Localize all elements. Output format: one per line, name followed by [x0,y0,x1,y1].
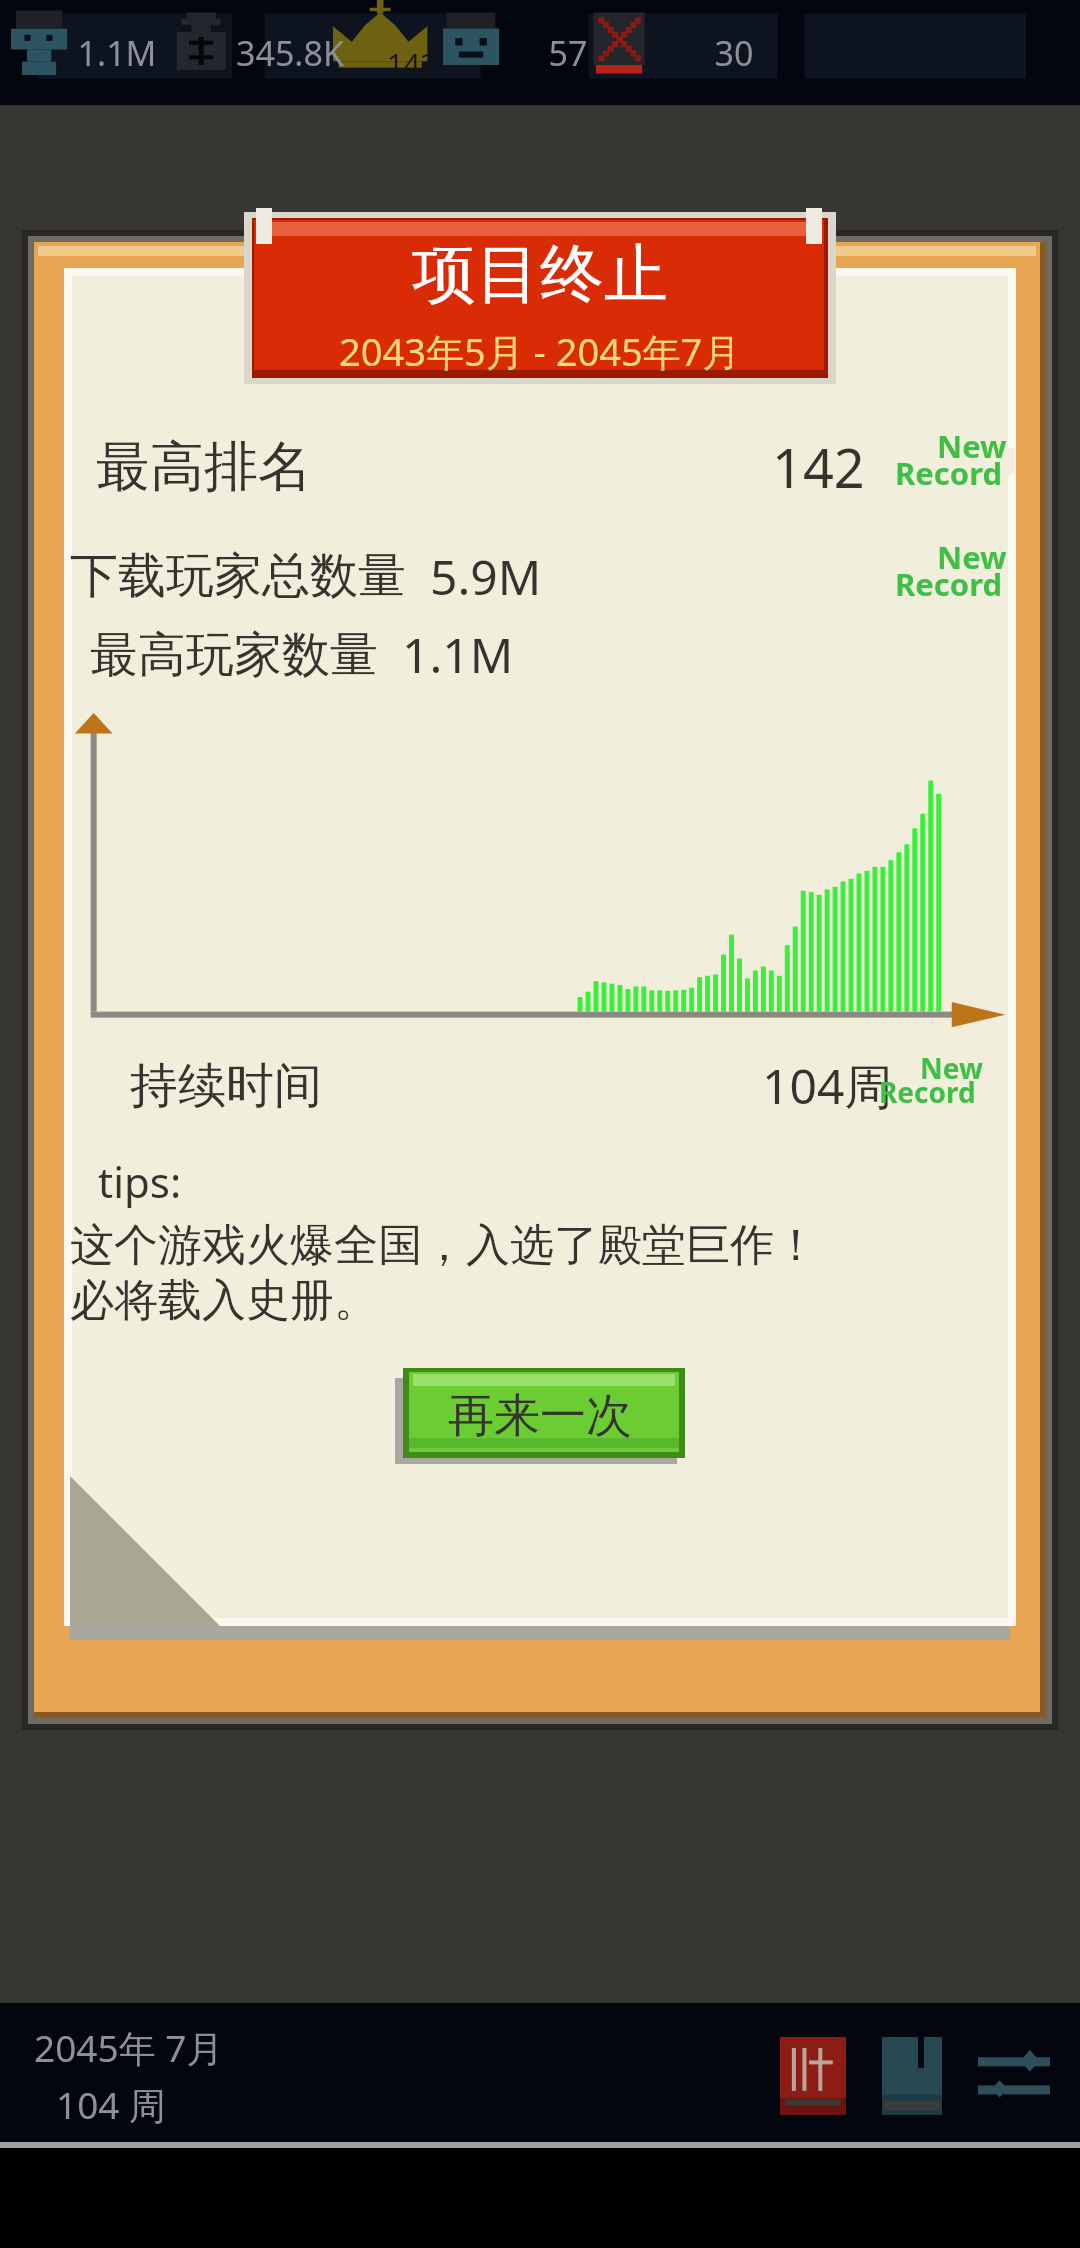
staticText: 最高排名 [96,433,312,501]
button[interactable]: 书籍 [882,2037,942,2115]
staticText: 项目终止 [412,234,668,315]
staticText: New [920,1049,983,1087]
staticText: 5.9M [430,544,542,609]
button[interactable]: 再来一次 [395,1368,685,1464]
staticText: 2045年 7月 [34,2022,224,2073]
staticText: 142 [387,44,437,83]
staticText: 30 [694,30,774,76]
staticText: Record [879,1073,976,1111]
staticText: 1.1M [402,622,514,687]
staticText: 持续时间 [130,1056,322,1116]
staticText: 1.1M [62,30,172,76]
staticText: New [937,425,1007,467]
staticText: Record [895,563,1003,605]
staticText: 57 [528,30,608,76]
staticText: tips: [98,1153,182,1210]
staticText: 2043年5月 - 2045年7月 [339,325,741,377]
staticText: 345.8K [220,30,360,76]
staticText: New [937,536,1007,578]
staticText: Record [895,452,1003,494]
staticText: 142 [772,430,865,504]
staticText: 再来一次 [448,1387,632,1445]
button[interactable]: 设置 [978,2037,1050,2115]
staticText: 这个游戏火爆全国，入选了殿堂巨作！ [70,1218,818,1273]
staticText: 最高玩家数量 [90,625,378,685]
staticText: 104周 [762,1053,893,1119]
staticText: 104 周 [56,2079,167,2130]
button[interactable]: 代金 [780,2037,846,2115]
staticText: 必将载入史册。 [70,1273,378,1328]
staticText: 下载玩家总数量 [70,546,406,606]
